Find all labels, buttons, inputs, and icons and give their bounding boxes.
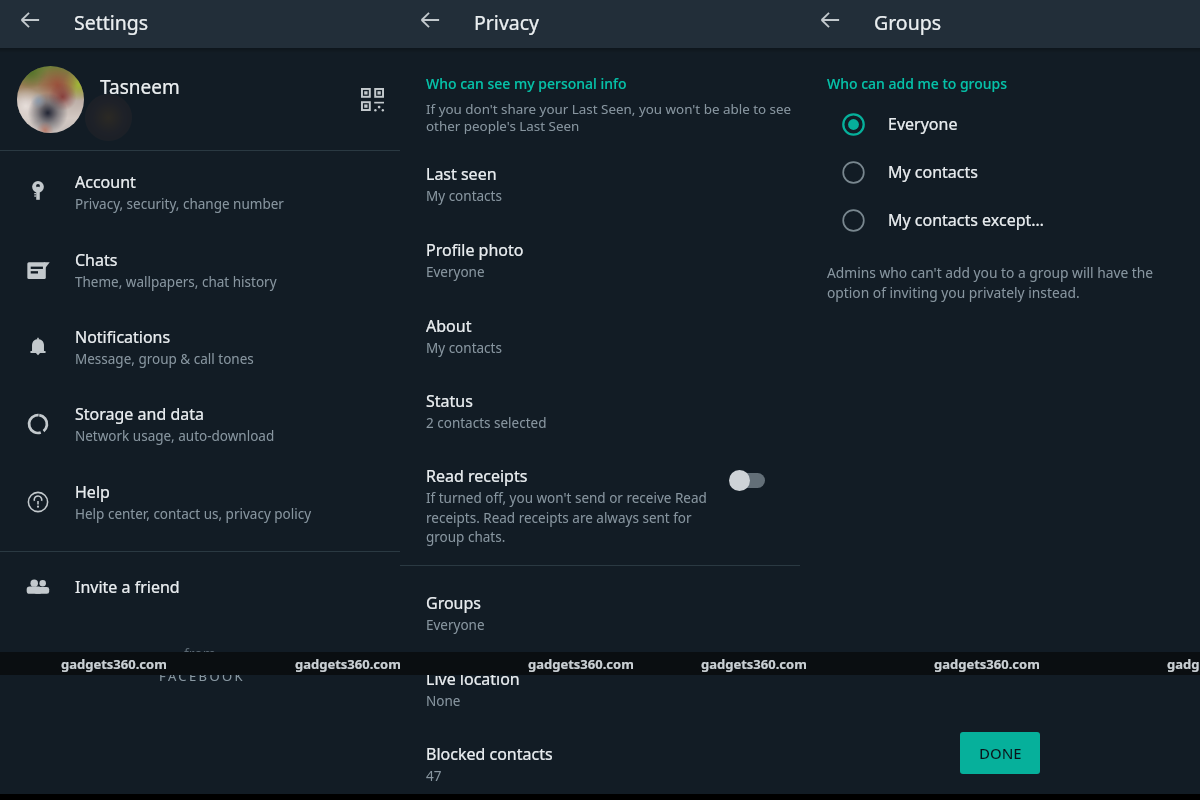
staticText: Last seen [426,163,497,185]
staticText: Read receipts [426,465,528,487]
staticText: Message, group & call tones [75,350,254,368]
button[interactable]: Groups [426,592,756,634]
button[interactable]: Back [8,0,52,42]
button[interactable]: Everyone [810,100,1190,148]
staticText: If you don't share your Last Seen, you w… [426,100,806,135]
button[interactable]: Notifications [0,319,400,375]
staticText: None [426,692,461,710]
staticText: FACEBOOK [159,667,245,685]
staticText: Everyone [426,263,485,281]
staticText: Privacy, security, change number [75,195,284,213]
staticText: Invite a friend [75,576,180,598]
staticText: Tasneem [100,74,180,100]
staticText: Network usage, auto-download [75,427,275,445]
button[interactable]: Help [0,474,400,530]
staticText: Theme, wallpapers, chat history [75,273,277,291]
button[interactable]: Live location [426,668,756,710]
staticText: 47 [426,767,442,785]
button[interactable]: Back [808,0,852,42]
button[interactable]: Status [426,390,756,432]
button[interactable]: DONE [960,732,1040,774]
button[interactable]: Last seen [426,163,756,205]
staticText: Groups [874,9,942,36]
staticText: My contacts except… [888,209,1044,231]
staticText: Help center, contact us, privacy policy [75,505,312,523]
button[interactable] [0,48,400,149]
button[interactable]: Who can see my personal info [426,74,627,93]
staticText: Privacy [474,9,540,36]
staticText: My contacts [426,339,502,357]
button[interactable]: About [426,315,756,357]
staticText: Storage and data [75,403,204,425]
button[interactable]: Storage and data [0,396,400,452]
staticText: 2 contacts selected [426,414,547,432]
staticText: Status [426,390,473,412]
staticText: DONE [979,743,1022,763]
staticText: If turned off, you won't send or receive… [426,489,716,546]
button[interactable]: My contacts [810,148,1190,196]
button[interactable]: My contacts except… [810,196,1190,244]
button[interactable]: Account [0,164,400,220]
button[interactable]: Read receipts [400,460,800,550]
staticText: About [426,315,472,337]
staticText: Blocked contacts [426,743,553,765]
staticText: Settings [74,9,149,36]
button[interactable]: Invite a friend [0,563,400,611]
staticText: Notifications [75,326,171,348]
button[interactable]: Who can add me to groups [827,74,1008,93]
staticText: Groups [426,592,482,614]
staticText: from [184,644,216,663]
staticText: gadgets360.com [295,655,401,673]
button[interactable]: QR code [354,81,391,118]
button[interactable]: Chats [0,242,400,298]
staticText: Admins who can't add you to a group will… [827,263,1160,302]
staticText: Help [75,481,110,503]
staticText: gadgets360.com [934,655,1040,673]
staticText: Account [75,171,136,193]
staticText: Everyone [426,616,485,634]
staticText: My contacts [426,187,502,205]
staticText: gadgets360.com [528,655,634,673]
button[interactable]: Read receipts toggle, off [729,468,769,492]
staticText: Chats [75,249,118,271]
staticText: gadgets360.com [701,655,807,673]
button[interactable]: Back [408,0,452,42]
button[interactable]: Profile photo [426,239,756,281]
staticText: Live location [426,668,520,690]
staticText: My contacts [888,161,978,183]
button[interactable]: Blocked contacts [426,743,756,785]
staticText: gadgets360.com [61,655,167,673]
staticText: Everyone [888,113,958,135]
staticText: Profile photo [426,239,524,261]
staticText: gadgets360.com [1167,655,1200,673]
